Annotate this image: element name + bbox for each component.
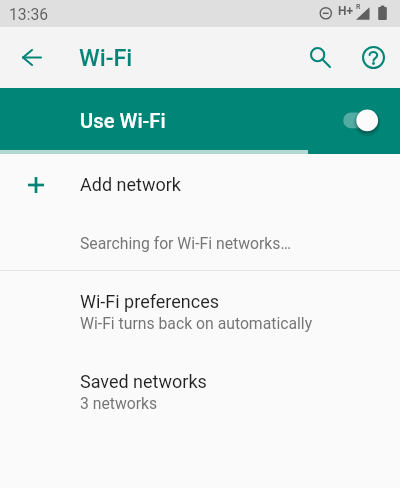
button[interactable]: Help [349, 27, 397, 88]
button[interactable]: Add network [0, 154, 400, 215]
button[interactable]: Saved networks [0, 351, 400, 431]
staticText: R [356, 3, 361, 11]
staticText: Searching for Wi-Fi networks… [80, 234, 291, 252]
button[interactable]: Wi-Fi preferences [0, 271, 400, 351]
staticText: 13:36 [9, 5, 49, 23]
button[interactable]: Search [292, 27, 349, 88]
staticText: Wi-Fi preferences [80, 291, 219, 312]
staticText: Wi-Fi turns back on automatically [80, 314, 313, 332]
staticText: 3 networks [80, 394, 158, 412]
staticText: Use Wi-Fi [80, 109, 166, 133]
staticText: Saved networks [80, 371, 207, 392]
staticText: H+ [338, 4, 354, 18]
staticText: Add network [80, 174, 181, 195]
button[interactable]: Navigate up [0, 27, 63, 88]
staticText: Wi-Fi [79, 44, 133, 72]
button[interactable]: Use Wi-Fi [0, 88, 400, 150]
